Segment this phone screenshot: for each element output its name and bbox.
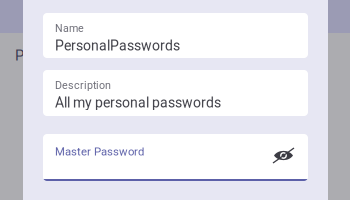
staticText: P	[15, 47, 24, 64]
staticText: All my personal passwords	[55, 94, 221, 111]
staticText: Name	[55, 22, 84, 34]
button[interactable]: Name	[43, 13, 308, 58]
staticText: Description	[55, 79, 111, 91]
button[interactable]: Master Password	[43, 134, 308, 181]
staticText: Master Password	[55, 145, 144, 158]
staticText: PersonalPasswords	[55, 37, 180, 54]
button[interactable]: Description	[43, 70, 308, 116]
